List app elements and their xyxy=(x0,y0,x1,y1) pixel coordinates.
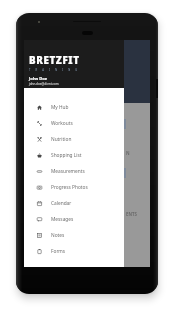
button[interactable]: Progress Photos xyxy=(24,179,124,195)
staticText: My Hub xyxy=(51,104,69,111)
staticText: Messages xyxy=(51,216,74,223)
button[interactable]: My Hub xyxy=(24,99,124,115)
button[interactable]: Measurements xyxy=(24,163,124,179)
button[interactable]: Shopping List xyxy=(24,147,124,163)
button[interactable]: Calendar xyxy=(24,195,124,211)
staticText: Calendar xyxy=(51,200,72,207)
button[interactable]: Messages xyxy=(24,211,124,227)
staticText: N xyxy=(126,150,130,156)
staticText: Forms xyxy=(51,248,66,255)
staticText: john.doe@client.com xyxy=(29,82,59,86)
staticText: Nutrition xyxy=(51,136,72,143)
staticText: ENTS xyxy=(126,211,137,217)
staticText: Measurements xyxy=(51,168,85,175)
button[interactable]: Notes xyxy=(24,227,124,243)
button[interactable]: Forms xyxy=(24,243,124,259)
staticText: BRETZFIT xyxy=(29,54,80,67)
staticText: Progress Photos xyxy=(51,184,88,191)
staticText: TRAINING xyxy=(29,68,83,72)
staticText: Notes xyxy=(51,232,65,239)
staticText: John Doe xyxy=(29,76,48,82)
button[interactable]: Workouts xyxy=(24,115,124,131)
staticText: Shopping List xyxy=(51,152,82,159)
button[interactable]: Nutrition xyxy=(24,131,124,147)
staticText: Workouts xyxy=(51,120,73,127)
